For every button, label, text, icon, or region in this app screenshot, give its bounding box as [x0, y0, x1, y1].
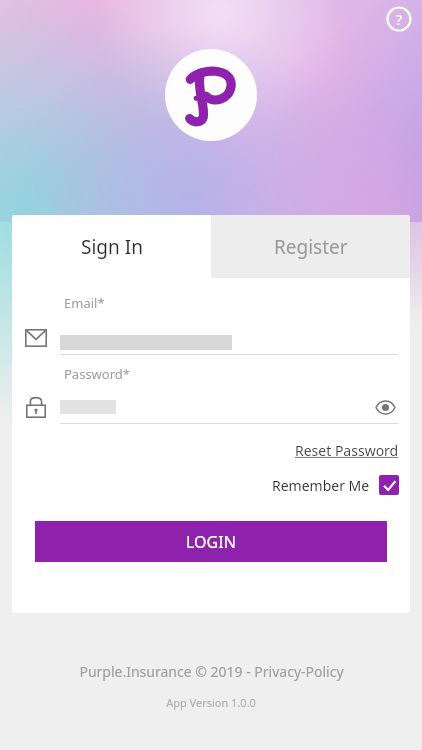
button[interactable]: Sign In	[12, 215, 211, 278]
staticText: Reset Password	[295, 441, 399, 460]
button[interactable]: Purple.Insurance © 2019 - Privacy-Policy	[79, 662, 344, 681]
button[interactable]: Remember Me	[12, 475, 410, 495]
staticText: ?	[396, 10, 403, 29]
staticText: Register	[274, 234, 348, 260]
staticText: Remember Me	[272, 476, 370, 495]
button[interactable]: Help	[384, 4, 414, 34]
button[interactable]: Reset Password	[284, 438, 410, 463]
staticText: Sign In	[81, 234, 143, 260]
staticText: Password*	[64, 365, 130, 383]
staticText: LOGIN	[186, 531, 236, 553]
button[interactable]: Show password	[370, 392, 400, 422]
button[interactable]: Register	[211, 215, 410, 278]
staticText: App Version 1.0.0	[166, 695, 256, 710]
button[interactable]	[12, 322, 410, 354]
button[interactable]: Show password	[12, 391, 410, 423]
button[interactable]: LOGIN	[35, 521, 387, 562]
staticText: Email*	[64, 294, 105, 312]
